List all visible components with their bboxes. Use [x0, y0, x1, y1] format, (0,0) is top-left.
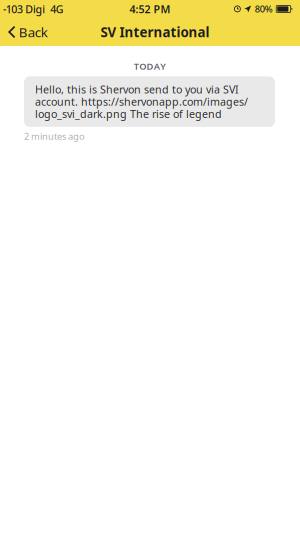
- button[interactable]: Hello, this is Shervon send to you via S…: [24, 76, 275, 127]
- staticText: TODAY: [134, 60, 166, 72]
- staticText: Hello, this is Shervon send to you via S…: [35, 82, 248, 121]
- staticText: 2 minutes ago: [24, 130, 85, 142]
- staticText: -103 Digi 4G: [3, 2, 64, 16]
- staticText: 4:52 PM: [129, 2, 170, 16]
- staticText: 80%: [255, 3, 273, 15]
- button[interactable]: Back: [0, 18, 56, 46]
- staticText: SV International: [100, 23, 209, 41]
- staticText: Back: [19, 23, 48, 41]
